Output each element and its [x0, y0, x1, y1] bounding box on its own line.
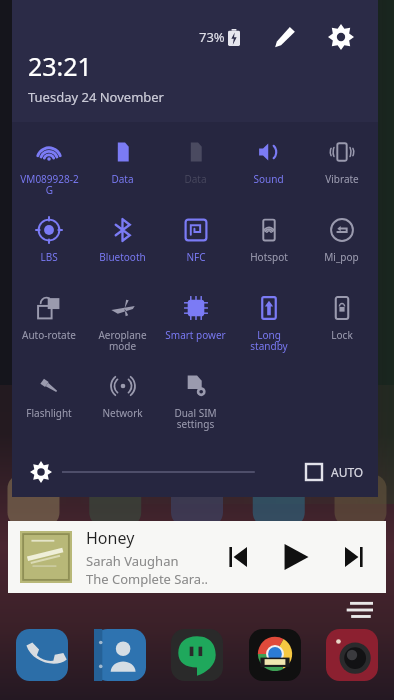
- staticText: Lock: [331, 328, 353, 342]
- staticText: 73%: [199, 28, 225, 46]
- button[interactable]: Mi_pop: [305, 206, 378, 284]
- button[interactable]: VM089928-2 G: [12, 128, 86, 206]
- button[interactable]: Smart power: [159, 284, 232, 362]
- staticText: Flashlight: [26, 406, 72, 420]
- button[interactable]: Hangouts: [169, 627, 225, 683]
- staticText: Sound: [253, 172, 284, 186]
- button[interactable]: Data: [159, 128, 232, 206]
- staticText: 23:21: [28, 49, 92, 83]
- staticText: Hotspot: [250, 250, 288, 264]
- button[interactable]: Sound: [232, 128, 305, 206]
- button[interactable]: Honey: [8, 521, 386, 593]
- button[interactable]: AUTO: [305, 463, 364, 481]
- button[interactable]: Bluetooth: [86, 206, 159, 284]
- button[interactable]: Lock: [305, 284, 378, 362]
- staticText: Dual SIM settings: [174, 406, 217, 431]
- button[interactable]: Contacts: [92, 627, 148, 683]
- staticText: Network: [102, 406, 143, 420]
- staticText: VM089928-2 G: [20, 172, 79, 197]
- staticText: LBS: [40, 250, 58, 264]
- staticText: Auto-rotate: [22, 328, 76, 342]
- button[interactable]: Settings: [322, 18, 360, 56]
- button[interactable]: [62, 460, 303, 484]
- button[interactable]: Flashlight: [12, 362, 86, 440]
- button[interactable]: Phone: [14, 627, 70, 683]
- button[interactable]: Dual SIM settings: [159, 362, 232, 440]
- button[interactable]: Data: [86, 128, 159, 206]
- button[interactable]: Chrome Beta: [247, 627, 303, 683]
- staticText: Honey: [86, 527, 135, 549]
- staticText: Long standby: [250, 328, 288, 353]
- staticText: Bluetooth: [99, 250, 146, 264]
- staticText: Vibrate: [325, 172, 359, 186]
- button[interactable]: Network: [86, 362, 159, 440]
- button[interactable]: Previous: [220, 539, 256, 575]
- button[interactable]: Next: [336, 539, 372, 575]
- button[interactable]: Edit: [268, 20, 302, 54]
- staticText: Smart power: [165, 328, 226, 342]
- staticText: Tuesday 24 November: [28, 88, 164, 106]
- button[interactable]: Auto-rotate: [12, 284, 86, 362]
- staticText: Data: [111, 172, 134, 186]
- button[interactable]: Aeroplane mode: [86, 284, 159, 362]
- button[interactable]: LBS: [12, 206, 86, 284]
- staticText: Sarah Vaughan: [86, 552, 179, 570]
- button[interactable]: [26, 457, 56, 487]
- staticText: NFC: [186, 250, 206, 264]
- staticText: The Complete Sara..: [86, 570, 209, 588]
- staticText: Aeroplane mode: [98, 328, 147, 353]
- button[interactable]: Camera: [324, 627, 380, 683]
- staticText: AUTO: [331, 464, 364, 480]
- button[interactable]: Vibrate: [305, 128, 378, 206]
- staticText: Mi_pop: [324, 250, 359, 264]
- button[interactable]: Play: [276, 537, 316, 577]
- button[interactable]: Hotspot: [232, 206, 305, 284]
- staticText: Data: [184, 172, 207, 186]
- button[interactable]: Notification settings: [345, 601, 373, 619]
- button[interactable]: NFC: [159, 206, 232, 284]
- button[interactable]: Long standby: [232, 284, 305, 362]
